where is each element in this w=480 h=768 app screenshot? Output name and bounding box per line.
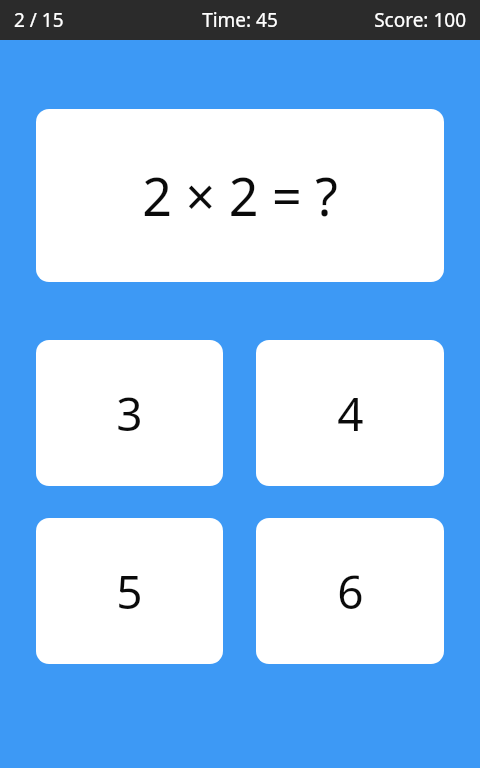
staticText: 2 / 15 [14,7,64,33]
button[interactable]: 6 [256,518,444,664]
staticText: 2 × 2 = ? [142,160,338,231]
staticText: 5 [116,560,143,623]
staticText: 3 [116,382,143,445]
button[interactable]: 2 × 2 = ? [36,109,444,282]
button[interactable]: 3 [36,340,223,486]
staticText: 6 [337,560,364,623]
staticText: Time: 45 [202,7,278,33]
button[interactable]: 4 [256,340,444,486]
staticText: Score: 100 [374,7,466,33]
staticText: 4 [337,382,364,445]
button[interactable]: 5 [36,518,223,664]
